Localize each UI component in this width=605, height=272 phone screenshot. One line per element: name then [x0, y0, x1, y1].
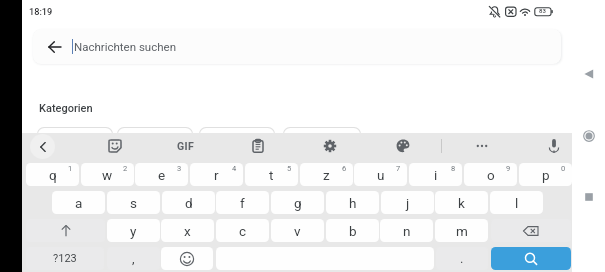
- button[interactable]: [283, 127, 361, 136]
- button[interactable]: c: [216, 219, 269, 242]
- staticText: 5: [287, 164, 292, 173]
- button[interactable]: .: [436, 247, 488, 270]
- staticText: w: [102, 167, 113, 183]
- staticText: 83: [539, 7, 546, 14]
- staticText: h: [349, 195, 357, 211]
- button[interactable]: d: [162, 191, 215, 214]
- button[interactable]: h: [326, 191, 379, 214]
- button[interactable]: Home: [572, 121, 605, 151]
- staticText: 6: [342, 164, 347, 173]
- button[interactable]: w: [81, 163, 134, 186]
- staticText: k: [458, 195, 465, 211]
- staticText: i: [434, 167, 438, 183]
- staticText: ?123: [53, 252, 77, 265]
- staticText: a: [75, 195, 83, 211]
- staticText: v: [294, 223, 301, 239]
- staticText: t: [269, 167, 274, 183]
- staticText: l: [515, 195, 519, 211]
- staticText: m: [456, 223, 468, 239]
- button[interactable]: Theme: [390, 133, 415, 158]
- button[interactable]: f: [216, 191, 269, 214]
- staticText: .: [460, 251, 464, 266]
- staticText: p: [542, 167, 550, 183]
- button[interactable]: y: [107, 219, 160, 242]
- button[interactable]: Emoji: [161, 247, 213, 270]
- staticText: 7: [396, 164, 401, 173]
- button[interactable]: Collapse toolbar: [30, 134, 55, 159]
- staticText: q: [49, 167, 57, 183]
- button[interactable]: n: [380, 219, 433, 242]
- button[interactable]: t: [245, 163, 298, 186]
- button[interactable]: Search: [491, 247, 571, 270]
- button[interactable]: Back: [572, 59, 605, 89]
- staticText: GIF: [177, 140, 195, 152]
- staticText: s: [130, 195, 137, 211]
- staticText: r: [214, 167, 219, 183]
- button[interactable]: g: [271, 191, 324, 214]
- button[interactable]: j: [381, 191, 434, 214]
- button[interactable]: x: [161, 219, 214, 242]
- staticText: 0: [561, 164, 566, 173]
- button[interactable]: ?123: [26, 247, 104, 270]
- button[interactable]: l: [490, 191, 543, 214]
- staticText: g: [294, 195, 302, 211]
- button[interactable]: p: [519, 163, 572, 186]
- staticText: 18:19: [29, 6, 53, 17]
- staticText: n: [403, 223, 411, 239]
- button[interactable]: Back: [33, 29, 561, 64]
- staticText: z: [323, 167, 330, 183]
- button[interactable]: u: [354, 163, 407, 186]
- staticText: 8: [451, 164, 456, 173]
- button[interactable]: o: [464, 163, 517, 186]
- button[interactable]: s: [107, 191, 160, 214]
- staticText: c: [239, 223, 247, 239]
- button[interactable]: m: [435, 219, 488, 242]
- button[interactable]: More options: [469, 133, 494, 158]
- button[interactable]: Recents: [572, 182, 605, 212]
- button[interactable]: r: [190, 163, 243, 186]
- button[interactable]: e: [135, 163, 188, 186]
- button[interactable]: [117, 127, 193, 136]
- staticText: 3: [177, 164, 182, 173]
- button[interactable]: Shift: [26, 219, 105, 242]
- button[interactable]: v: [271, 219, 324, 242]
- staticText: d: [185, 195, 193, 211]
- staticText: 9: [506, 164, 511, 173]
- staticText: 1: [68, 164, 73, 173]
- button[interactable]: q: [26, 163, 79, 186]
- staticText: x: [184, 223, 191, 239]
- button[interactable]: [199, 127, 275, 136]
- button[interactable]: Settings: [317, 133, 342, 158]
- button[interactable]: i: [409, 163, 462, 186]
- staticText: ,: [132, 251, 135, 266]
- button[interactable]: ,: [107, 247, 160, 270]
- staticText: 4: [232, 164, 237, 173]
- button[interactable]: Stickers: [102, 133, 127, 158]
- staticText: j: [406, 195, 410, 211]
- button[interactable]: b: [326, 219, 379, 242]
- button[interactable]: GIF: [170, 133, 202, 158]
- button[interactable]: [37, 127, 113, 136]
- staticText: o: [487, 167, 495, 183]
- button[interactable]: Backspace: [491, 219, 571, 242]
- button[interactable]: z: [300, 163, 353, 186]
- staticText: 2: [123, 164, 128, 173]
- button[interactable]: Back: [39, 29, 71, 64]
- staticText: Kategorien: [39, 102, 93, 115]
- staticText: y: [130, 223, 137, 239]
- staticText: Nachrichten suchen: [74, 40, 177, 53]
- button[interactable]: a: [52, 191, 105, 214]
- staticText: b: [349, 223, 357, 239]
- staticText: u: [377, 167, 385, 183]
- staticText: e: [158, 167, 166, 183]
- button[interactable]: Clipboard: [245, 133, 270, 158]
- button[interactable]: Voice input: [541, 133, 566, 158]
- button[interactable]: k: [435, 191, 488, 214]
- staticText: f: [240, 195, 245, 211]
